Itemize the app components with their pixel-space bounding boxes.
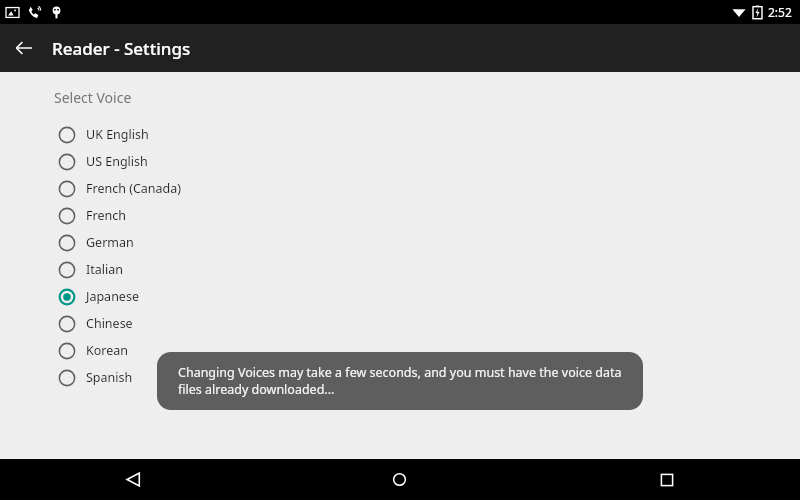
staticText: German	[86, 234, 134, 251]
staticText: 2:52	[768, 4, 792, 20]
staticText: Changing Voices may take a few seconds, …	[178, 364, 625, 398]
staticText: French	[86, 207, 126, 224]
staticText: UK English	[86, 126, 149, 143]
button[interactable]: Back	[0, 459, 266, 500]
staticText: Japanese	[86, 288, 139, 305]
staticText: Spanish	[86, 369, 133, 386]
button[interactable]: UK English	[0, 121, 800, 148]
staticText: US English	[86, 153, 148, 170]
button[interactable]: German	[0, 229, 800, 256]
staticText: Italian	[86, 261, 123, 278]
button[interactable]: Korean	[0, 337, 800, 364]
button[interactable]: Back	[8, 32, 40, 64]
button[interactable]: US English	[0, 148, 800, 175]
staticText: French (Canada)	[86, 180, 182, 197]
staticText: Reader - Settings	[52, 37, 191, 60]
staticText: Chinese	[86, 315, 133, 332]
button[interactable]: Changing Voices may take a few seconds, …	[157, 352, 643, 410]
button[interactable]: French	[0, 202, 800, 229]
staticText: Select Voice	[54, 88, 132, 107]
button[interactable]: Italian	[0, 256, 800, 283]
button[interactable]: Chinese	[0, 310, 800, 337]
button[interactable]: Recent apps	[533, 459, 800, 500]
button[interactable]: Spanish	[0, 364, 800, 391]
button[interactable]: Japanese	[0, 283, 800, 310]
staticText: Korean	[86, 342, 129, 359]
button[interactable]: Home	[266, 459, 533, 500]
button[interactable]: French (Canada)	[0, 175, 800, 202]
